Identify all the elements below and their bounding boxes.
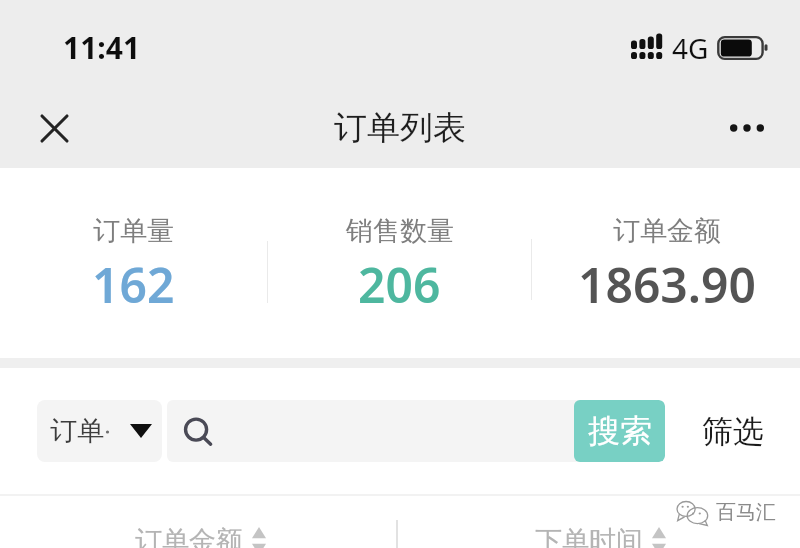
staticText: 订单金额 (135, 524, 243, 548)
staticText: 206 (358, 252, 441, 317)
staticText: 11:41 (63, 27, 141, 68)
button[interactable]: More options (718, 99, 776, 157)
staticText: 订单金额 (613, 214, 721, 248)
staticText: 162 (92, 252, 175, 317)
staticText: 筛选 (702, 412, 764, 451)
staticText: 订单量 (93, 214, 174, 248)
staticText: 1863.90 (578, 252, 756, 317)
staticText: 订单 (50, 414, 104, 448)
button[interactable]: Close (22, 96, 86, 160)
staticText: 百马汇 (716, 500, 776, 525)
staticText: 订单列表 (334, 107, 466, 149)
button[interactable]: 筛选 (665, 400, 800, 462)
button[interactable]: 订单 (37, 400, 162, 462)
staticText: 销售数量 (346, 214, 454, 248)
button[interactable]: 搜索 (574, 400, 665, 462)
staticText: 搜索 (588, 411, 652, 451)
staticText: 4G (672, 29, 709, 67)
staticText: 下单时间 (535, 524, 643, 548)
button[interactable]: 订单金额 (0, 524, 400, 548)
button[interactable]: 下单时间 (400, 524, 800, 548)
